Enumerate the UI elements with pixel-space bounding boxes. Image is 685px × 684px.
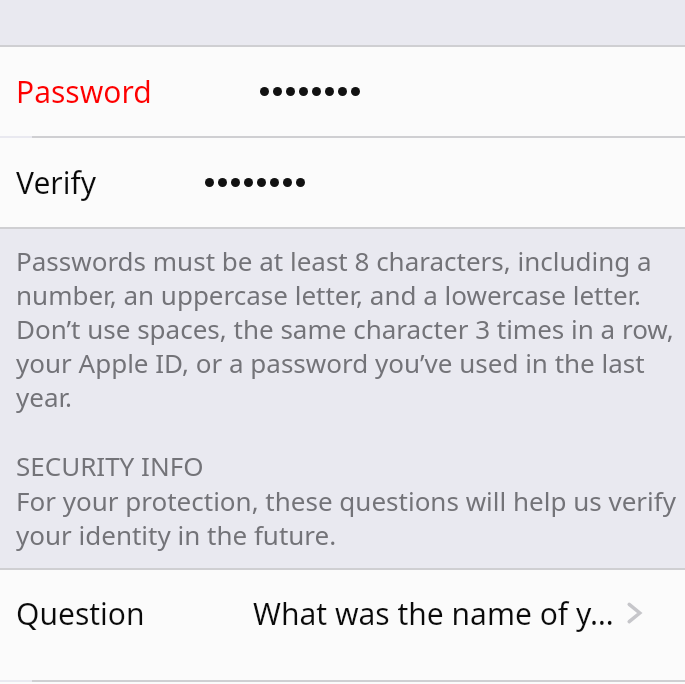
staticText: What was the name of y… xyxy=(253,593,614,634)
staticText: SECURITY INFO xyxy=(16,448,204,483)
staticText: Verify xyxy=(16,162,97,203)
button[interactable]: Password xyxy=(0,47,685,136)
button[interactable]: Question xyxy=(0,570,685,656)
other: Open question picker xyxy=(622,601,646,625)
staticText: For your protection, these questions wil… xyxy=(16,483,677,552)
staticText: Passwords must be at least 8 characters,… xyxy=(16,243,677,414)
staticText: Question xyxy=(16,593,145,634)
staticText: Password xyxy=(16,71,152,112)
button[interactable]: Verify xyxy=(0,138,685,227)
